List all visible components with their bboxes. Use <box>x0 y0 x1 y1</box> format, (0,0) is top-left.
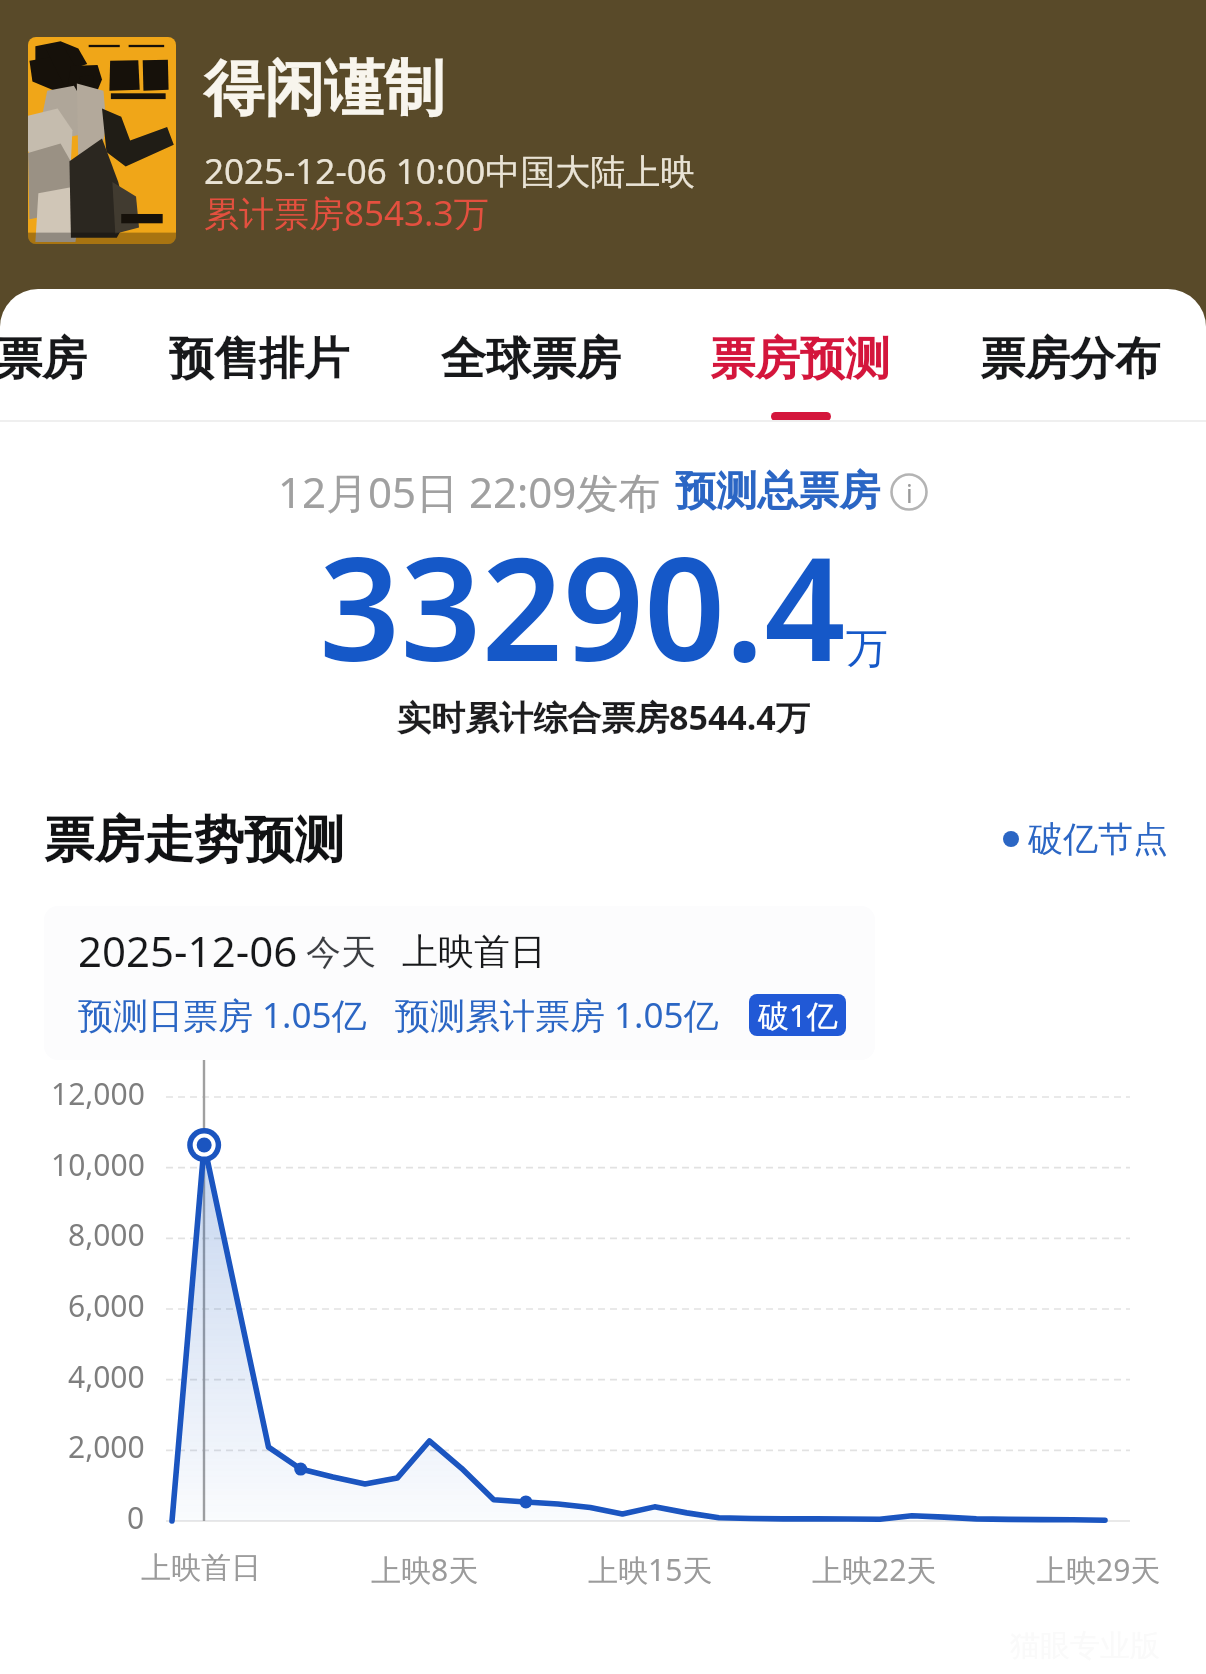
staticText: 票房分布 <box>980 331 1160 388</box>
staticText: 上映29天 <box>1036 1549 1161 1590</box>
staticText: 8,000 <box>68 1214 145 1255</box>
button[interactable]: 票房分布 <box>965 295 1175 411</box>
staticText: 12月05日 22:09发布 <box>278 463 661 520</box>
staticText: 破亿节点 <box>1028 817 1168 861</box>
staticText: 万 <box>846 623 888 676</box>
button[interactable]: 票房 <box>0 295 102 411</box>
button[interactable]: 2025-12-06 <box>44 906 875 1060</box>
button[interactable]: 得闲谨制 海报 <box>0 0 1206 290</box>
staticText: 上映首日 <box>402 929 546 974</box>
staticText: 上映8天 <box>371 1549 479 1590</box>
staticText: 10,000 <box>51 1144 145 1185</box>
staticText: 票房预测 <box>710 331 890 388</box>
staticText: 2025-12-06 <box>78 922 298 979</box>
staticText: 票房 <box>0 331 87 388</box>
staticText: 6,000 <box>68 1285 145 1326</box>
staticText: 2025-12-06 10:00中国大陆上映 <box>204 147 696 195</box>
staticText: 上映22天 <box>812 1549 937 1590</box>
staticText: 预测日票房 1.05亿 <box>78 991 367 1039</box>
staticText: 预测总票房 <box>675 466 880 518</box>
staticText: 预售排片 <box>169 331 349 388</box>
staticText: 今天 <box>306 930 376 974</box>
staticText: 实时累计综合票房8544.4万 <box>397 694 810 740</box>
staticText: 12,000 <box>51 1073 145 1114</box>
button[interactable]: 得闲谨制 海报 <box>28 37 176 244</box>
staticText: 33290.4 <box>319 509 846 702</box>
staticText: 上映首日 <box>141 1549 261 1587</box>
staticText: 预测累计票房 1.05亿 <box>395 991 719 1039</box>
staticText: 票房走势预测 <box>44 809 344 872</box>
staticText: 全球票房 <box>441 331 621 388</box>
button[interactable]: 破亿节点 <box>1003 817 1168 861</box>
staticText: 2,000 <box>68 1426 145 1467</box>
staticText: 4,000 <box>68 1356 145 1397</box>
staticText: 累计票房8543.3万 <box>204 189 489 237</box>
staticText: i <box>906 475 913 510</box>
staticText: 破1亿 <box>758 994 838 1036</box>
button[interactable]: 票房预测 <box>695 295 905 411</box>
button[interactable]: 预测说明 <box>890 473 928 511</box>
staticText: 0 <box>127 1497 145 1538</box>
button[interactable]: 全球票房 <box>426 295 636 411</box>
staticText: 上映15天 <box>588 1549 713 1590</box>
staticText: 得闲谨制 <box>204 51 444 127</box>
button[interactable]: 预售排片 <box>154 295 364 411</box>
